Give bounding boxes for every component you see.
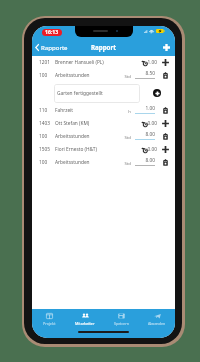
staticText: h — [115, 108, 131, 114]
staticText: Brenner Hansueli (PL) — [55, 59, 104, 66]
staticText: 1403 — [39, 120, 55, 127]
staticText: 100 — [39, 159, 55, 166]
staticText: 110 — [39, 107, 55, 114]
button[interactable]: 100 — [32, 156, 175, 169]
staticText: 8.50 — [135, 70, 155, 77]
staticText: Rapport — [91, 43, 116, 51]
staticText: Std — [115, 134, 131, 140]
button[interactable]: 1403 — [32, 117, 175, 130]
button[interactable]: Add — [158, 40, 175, 55]
button[interactable]: Mitarbeiter — [67, 309, 103, 329]
staticText: Rapporte — [41, 43, 68, 51]
staticText: 0.00 — [138, 146, 157, 153]
staticText: Absenden — [148, 321, 166, 326]
staticText: Std — [115, 160, 131, 166]
button[interactable]: Garten fertiggestellt — [54, 84, 140, 103]
button[interactable]: 100 — [32, 69, 175, 82]
staticText: 1201 — [39, 59, 55, 66]
staticText: 100 — [39, 133, 55, 140]
button[interactable]: 1505 — [32, 143, 175, 156]
button[interactable]: Speicern — [103, 309, 139, 329]
staticText: 1.00 — [138, 59, 157, 66]
staticText: Std — [115, 73, 131, 79]
staticText: 8.00 — [135, 131, 155, 138]
staticText: 1.00 — [135, 105, 155, 112]
staticText: Ott Stefan (KM) — [55, 120, 90, 127]
staticText: 0.00 — [138, 120, 157, 127]
staticText: Fahrzeit — [55, 107, 74, 114]
button[interactable]: 1201 — [32, 56, 175, 69]
button[interactable]: Projekt — [32, 309, 67, 329]
staticText: 8.00 — [135, 157, 155, 164]
staticText: 1505 — [39, 146, 55, 153]
staticText: Speicern — [114, 321, 129, 326]
staticText: Arbeitsstunden — [55, 133, 90, 140]
staticText: 100 — [39, 72, 55, 79]
staticText: Garten fertiggestellt — [57, 90, 103, 97]
button[interactable]: Absenden — [139, 309, 175, 329]
staticText: Projekt — [43, 321, 56, 326]
staticText: Fiori Ernesto (H&T) — [55, 146, 97, 153]
button[interactable]: Add entry — [153, 89, 161, 97]
staticText: Arbeitsstunden — [55, 72, 90, 79]
staticText: Arbeitsstunden — [55, 159, 90, 166]
staticText: 16:13 — [45, 29, 59, 36]
button[interactable]: 110 — [32, 104, 175, 117]
button[interactable]: 100 — [32, 130, 175, 143]
staticText: Mitarbeiter — [75, 321, 95, 326]
button[interactable]: Rapporte — [32, 40, 72, 54]
